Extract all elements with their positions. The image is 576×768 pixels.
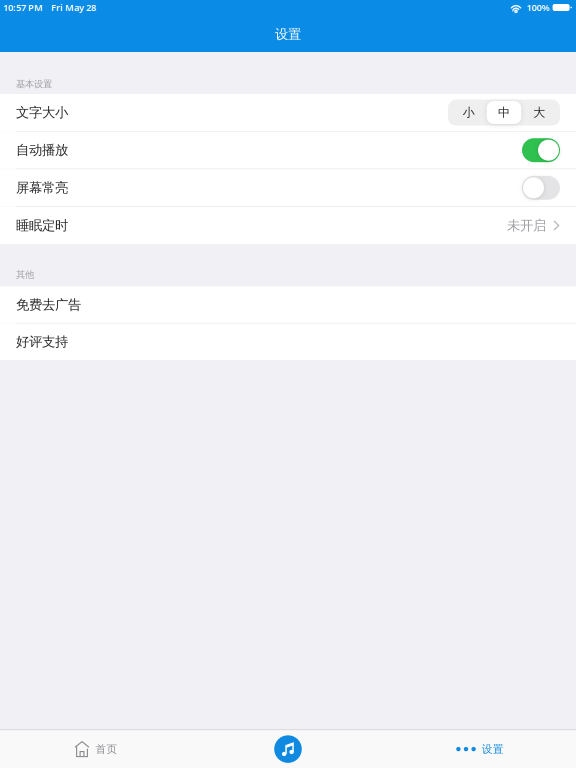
button[interactable]: Play music (192, 730, 384, 768)
button[interactable]: 睡眠定时 (0, 207, 576, 244)
button[interactable]: 自动播放 (0, 132, 576, 169)
staticText: 小 (463, 105, 475, 120)
staticText: 中 (498, 105, 510, 120)
staticText: 免费去广告 (16, 296, 81, 313)
button[interactable]: 好评支持 (0, 324, 576, 360)
staticText: 设置 (482, 742, 504, 756)
staticText: 10:57 PM (3, 1, 43, 14)
button[interactable]: 文字大小 (0, 94, 576, 131)
staticText: Fri May 28 (51, 1, 96, 14)
button[interactable]: 屏幕常亮 (0, 169, 576, 206)
staticText: 大 (533, 105, 545, 120)
button[interactable]: 小 (451, 101, 487, 124)
staticText: 基本设置 (16, 78, 52, 90)
staticText: 100% (527, 1, 550, 14)
button[interactable]: 免费去广告 (0, 286, 576, 323)
staticText: 自动播放 (16, 142, 68, 158)
staticText: 文字大小 (16, 104, 68, 121)
staticText: 未开启 (507, 217, 546, 234)
staticText: 设置 (275, 26, 301, 42)
staticText: 屏幕常亮 (16, 180, 68, 196)
staticText: 其他 (16, 269, 34, 280)
staticText: 睡眠定时 (16, 217, 68, 234)
button[interactable]: 首页 (0, 730, 192, 768)
button[interactable]: 大 (521, 101, 557, 124)
staticText: 好评支持 (16, 334, 68, 350)
staticText: 首页 (96, 742, 118, 756)
button[interactable]: 中 (487, 101, 521, 124)
button[interactable]: 设置 (384, 730, 576, 768)
